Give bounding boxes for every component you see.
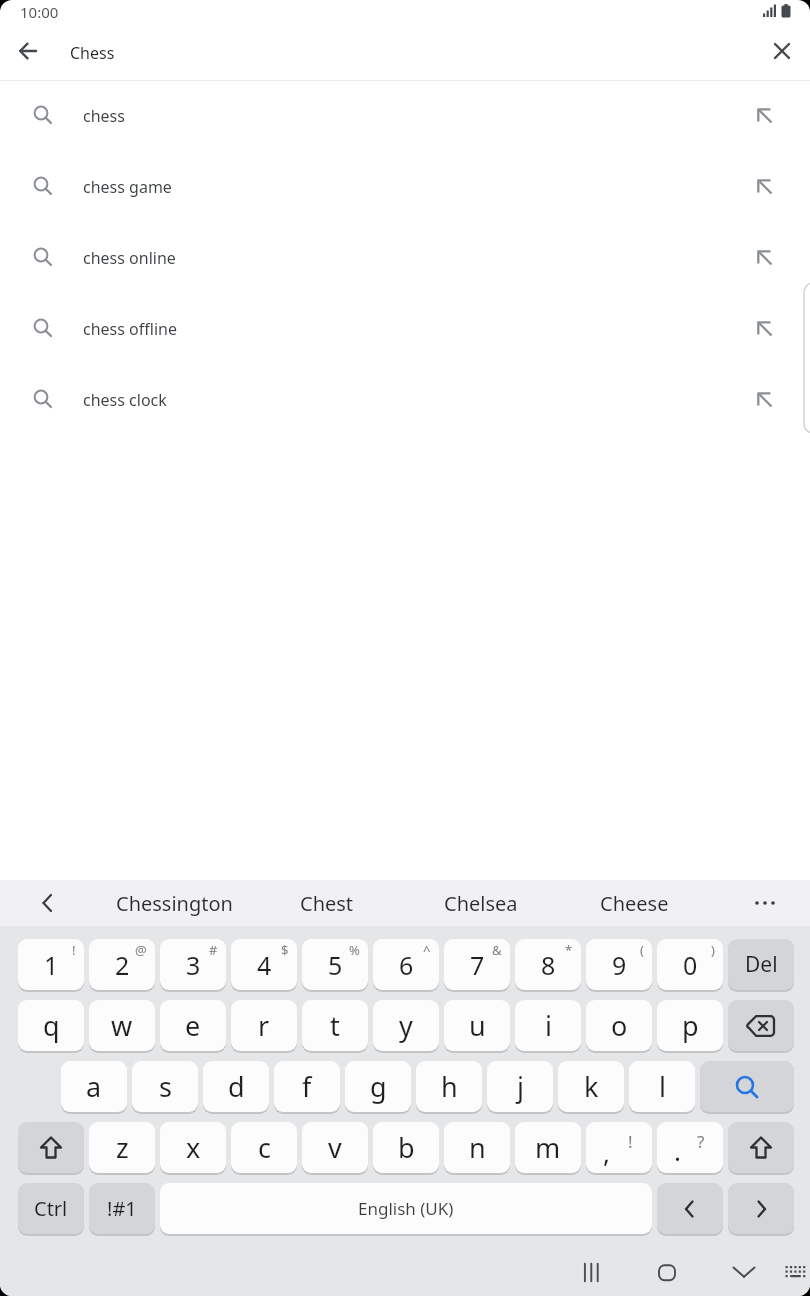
staticText: w (111, 1007, 133, 1044)
staticText: $ (281, 941, 289, 959)
button[interactable]: q (18, 1000, 84, 1051)
button[interactable]: y (373, 1000, 439, 1051)
staticText: * (565, 941, 573, 959)
button[interactable]: . (657, 1122, 723, 1173)
staticText: Chest (300, 890, 354, 917)
button[interactable]: 1 (18, 939, 84, 990)
staticText: x (186, 1129, 201, 1166)
button[interactable]: b (373, 1122, 439, 1173)
button[interactable]: e (160, 1000, 226, 1051)
button[interactable]: Del (728, 939, 794, 990)
button[interactable]: 9 (586, 939, 652, 990)
button[interactable] (752, 893, 778, 913)
staticText: English (UK) (358, 1197, 454, 1220)
button[interactable]: k (558, 1061, 624, 1112)
button[interactable]: s (132, 1061, 198, 1112)
staticText: 9 (612, 948, 627, 982)
button[interactable]: 2 (89, 939, 155, 990)
staticText: k (584, 1068, 599, 1105)
button[interactable]: 3 (160, 939, 226, 990)
button[interactable] (657, 1183, 723, 1234)
button[interactable] (8, 32, 46, 70)
button[interactable]: Cheese (559, 880, 709, 926)
staticText: !#1 (107, 1195, 137, 1222)
staticText: & (492, 941, 502, 959)
button[interactable]: p (657, 1000, 723, 1051)
button[interactable]: a (61, 1061, 127, 1112)
staticText: g (370, 1068, 387, 1105)
button[interactable]: Ctrl (18, 1183, 84, 1234)
staticText: f (302, 1068, 312, 1105)
button[interactable]: c (231, 1122, 297, 1173)
button[interactable]: f (274, 1061, 340, 1112)
staticText: 10:00 (20, 2, 59, 22)
button[interactable] (575, 1257, 607, 1289)
button[interactable]: n (444, 1122, 510, 1173)
staticText: # (209, 941, 218, 959)
button[interactable]: chess clock (0, 364, 810, 435)
staticText: Chessington (116, 890, 233, 917)
button[interactable]: z (89, 1122, 155, 1173)
staticText: 0 (683, 948, 698, 982)
button[interactable] (651, 1257, 683, 1289)
button[interactable]: o (586, 1000, 652, 1051)
staticText: a (86, 1068, 102, 1105)
button[interactable] (728, 1183, 794, 1234)
button[interactable]: j (487, 1061, 553, 1112)
button[interactable]: 7 (444, 939, 510, 990)
button[interactable]: English (UK) (160, 1183, 652, 1234)
button[interactable]: Chelsea (406, 880, 556, 926)
button[interactable]: , (586, 1122, 652, 1173)
staticText: ) (711, 941, 715, 959)
button[interactable]: Chest (252, 880, 402, 926)
button[interactable] (784, 1263, 808, 1283)
staticText: , (603, 1135, 610, 1170)
staticText: y (399, 1007, 413, 1044)
button[interactable]: chess online (0, 222, 810, 293)
button[interactable]: l (629, 1061, 695, 1112)
button[interactable]: x (160, 1122, 226, 1173)
staticText: 8 (541, 948, 556, 982)
button[interactable]: !#1 (89, 1183, 155, 1234)
staticText: r (258, 1007, 270, 1044)
button[interactable] (763, 32, 801, 70)
button[interactable]: u (444, 1000, 510, 1051)
button[interactable]: w (89, 1000, 155, 1051)
staticText: chess online (83, 247, 176, 269)
staticText: s (159, 1068, 172, 1105)
button[interactable]: h (416, 1061, 482, 1112)
button[interactable] (700, 1061, 794, 1112)
button[interactable]: d (203, 1061, 269, 1112)
button[interactable]: chess game (0, 151, 810, 222)
button[interactable]: i (515, 1000, 581, 1051)
button[interactable]: 0 (657, 939, 723, 990)
button[interactable]: v (302, 1122, 368, 1173)
button[interactable]: Chessington (99, 880, 249, 926)
button[interactable]: t (302, 1000, 368, 1051)
button[interactable]: 4 (231, 939, 297, 990)
staticText: ! (72, 941, 76, 959)
button[interactable] (18, 1122, 84, 1173)
button[interactable]: chess (0, 80, 810, 151)
button[interactable] (728, 1257, 760, 1289)
button[interactable]: g (345, 1061, 411, 1112)
staticText: j (517, 1068, 524, 1105)
button[interactable]: 6 (373, 939, 439, 990)
button[interactable] (728, 1122, 794, 1173)
staticText: ^ (423, 941, 431, 959)
staticText: 6 (399, 948, 414, 982)
staticText: i (545, 1007, 552, 1044)
button[interactable]: m (515, 1122, 581, 1173)
button[interactable]: 5 (302, 939, 368, 990)
staticText: Chelsea (444, 890, 518, 917)
staticText: . (674, 1133, 681, 1168)
staticText: m (535, 1129, 561, 1166)
staticText: % (349, 941, 360, 959)
staticText: t (330, 1007, 340, 1044)
button[interactable] (728, 1000, 794, 1051)
staticText: 1 (44, 948, 59, 982)
staticText: n (469, 1129, 486, 1166)
button[interactable]: r (231, 1000, 297, 1051)
button[interactable]: chess offline (0, 293, 810, 364)
button[interactable]: 8 (515, 939, 581, 990)
